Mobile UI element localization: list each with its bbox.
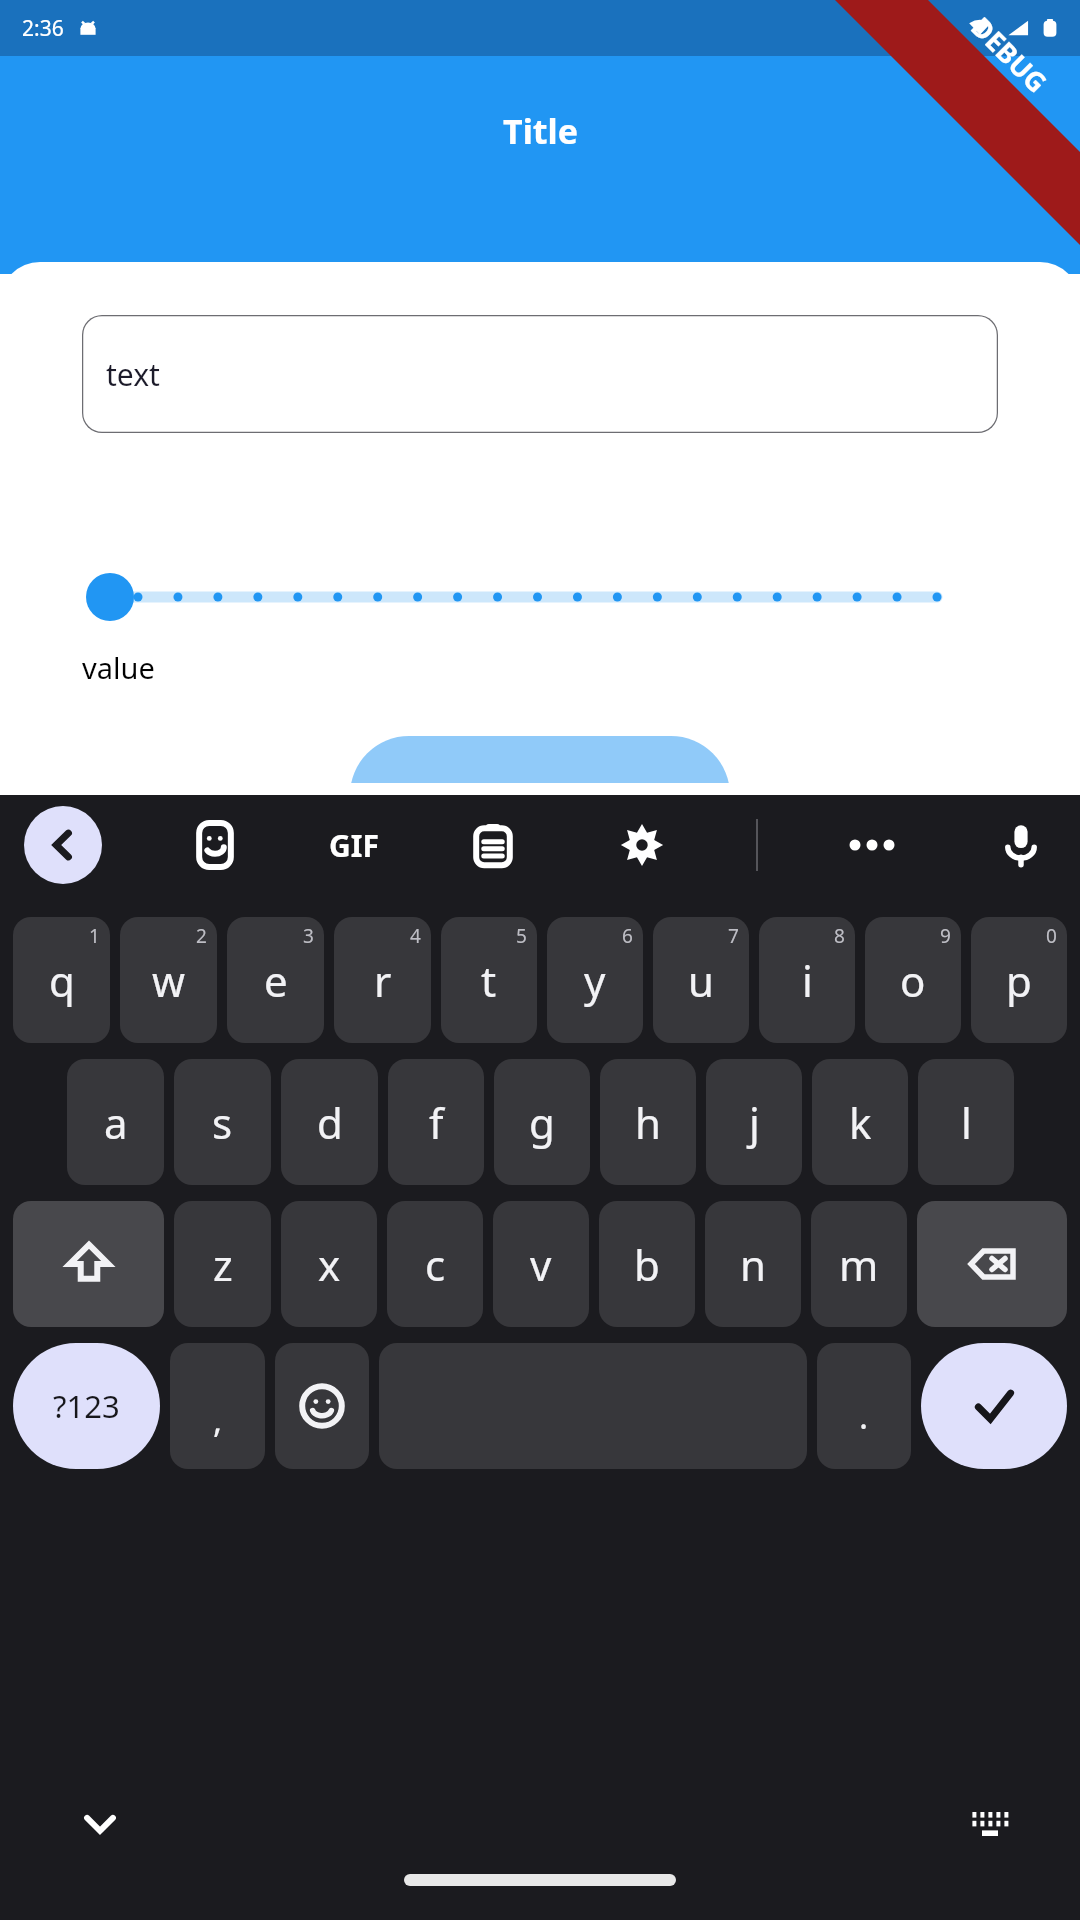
staticText: r: [374, 952, 392, 1009]
staticText: f: [429, 1094, 444, 1151]
button[interactable]: g: [494, 1059, 590, 1185]
staticText: u: [688, 952, 714, 1009]
staticText: 4: [410, 923, 421, 949]
button[interactable]: Voice input: [986, 810, 1056, 880]
staticText: text: [106, 354, 160, 395]
staticText: i: [802, 952, 813, 1009]
staticText: x: [318, 1236, 341, 1293]
button[interactable]: w: [120, 917, 217, 1043]
button[interactable]: Shift: [13, 1201, 164, 1327]
button[interactable]: u: [653, 917, 749, 1043]
button[interactable]: Enter: [921, 1343, 1067, 1469]
staticText: h: [635, 1094, 661, 1151]
staticText: .: [859, 1393, 869, 1439]
button[interactable]: m: [811, 1201, 907, 1327]
staticText: 0: [1046, 923, 1057, 949]
button[interactable]: text: [82, 315, 998, 433]
staticText: 6: [622, 923, 633, 949]
button[interactable]: q: [13, 917, 110, 1043]
button[interactable]: Comma: [170, 1343, 265, 1469]
button[interactable]: i: [759, 917, 855, 1043]
staticText: e: [264, 952, 288, 1009]
staticText: ,: [213, 1397, 223, 1443]
button[interactable]: d: [281, 1059, 378, 1185]
button[interactable]: Clipboard: [458, 810, 528, 880]
button[interactable]: Emoji: [275, 1343, 369, 1469]
staticText: k: [849, 1094, 872, 1151]
button[interactable]: Back: [24, 806, 102, 884]
button[interactable]: o: [865, 917, 961, 1043]
button[interactable]: Stickers: [180, 810, 250, 880]
button[interactable]: Settings: [607, 810, 677, 880]
staticText: n: [740, 1236, 766, 1293]
staticText: t: [481, 952, 497, 1009]
staticText: b: [634, 1236, 660, 1293]
button[interactable]: [82, 567, 1080, 627]
button[interactable]: a: [67, 1059, 164, 1185]
staticText: 2: [196, 923, 207, 949]
staticText: j: [749, 1094, 760, 1151]
staticText: z: [213, 1236, 233, 1293]
staticText: GIF: [329, 825, 379, 866]
button[interactable]: Proceed: [350, 736, 730, 783]
button[interactable]: e: [227, 917, 324, 1043]
button[interactable]: b: [599, 1201, 695, 1327]
staticText: s: [212, 1094, 233, 1151]
button[interactable]: x: [281, 1201, 377, 1327]
button[interactable]: f: [388, 1059, 484, 1185]
button[interactable]: k: [812, 1059, 908, 1185]
staticText: m: [839, 1236, 879, 1293]
button[interactable]: l: [918, 1059, 1014, 1185]
staticText: q: [49, 952, 75, 1009]
button[interactable]: t: [441, 917, 537, 1043]
staticText: ?123: [53, 1385, 120, 1427]
staticText: w: [152, 952, 186, 1009]
staticText: o: [900, 952, 926, 1009]
button[interactable]: Period: [817, 1343, 911, 1469]
button[interactable]: r: [334, 917, 431, 1043]
button[interactable]: v: [493, 1201, 589, 1327]
button[interactable]: s: [174, 1059, 271, 1185]
button[interactable]: Symbols: [13, 1343, 160, 1469]
staticText: 8: [834, 923, 845, 949]
button[interactable]: Backspace: [917, 1201, 1067, 1327]
button[interactable]: c: [387, 1201, 483, 1327]
staticText: 2:36: [22, 14, 64, 43]
button[interactable]: More options: [837, 810, 907, 880]
button[interactable]: Switch keyboard: [960, 1794, 1020, 1854]
staticText: 9: [940, 923, 951, 949]
button[interactable]: j: [706, 1059, 802, 1185]
staticText: d: [317, 1094, 343, 1151]
staticText: value: [82, 648, 155, 687]
staticText: 5: [516, 923, 527, 949]
button[interactable]: p: [971, 917, 1067, 1043]
staticText: l: [961, 1094, 972, 1151]
staticText: c: [425, 1236, 446, 1293]
button[interactable]: y: [547, 917, 643, 1043]
staticText: g: [529, 1094, 555, 1151]
staticText: Title: [503, 108, 578, 154]
staticText: a: [104, 1094, 128, 1151]
staticText: v: [530, 1236, 552, 1293]
button[interactable]: Hide keyboard: [70, 1794, 130, 1854]
button[interactable]: z: [174, 1201, 271, 1327]
staticText: y: [584, 952, 606, 1009]
button[interactable]: GIF: [329, 810, 379, 880]
staticText: p: [1006, 952, 1032, 1009]
staticText: 3: [303, 923, 314, 949]
staticText: DEBUG: [963, 8, 1055, 100]
staticText: 7: [728, 923, 739, 949]
button[interactable]: n: [705, 1201, 801, 1327]
staticText: 1: [89, 923, 100, 949]
button[interactable]: h: [600, 1059, 696, 1185]
